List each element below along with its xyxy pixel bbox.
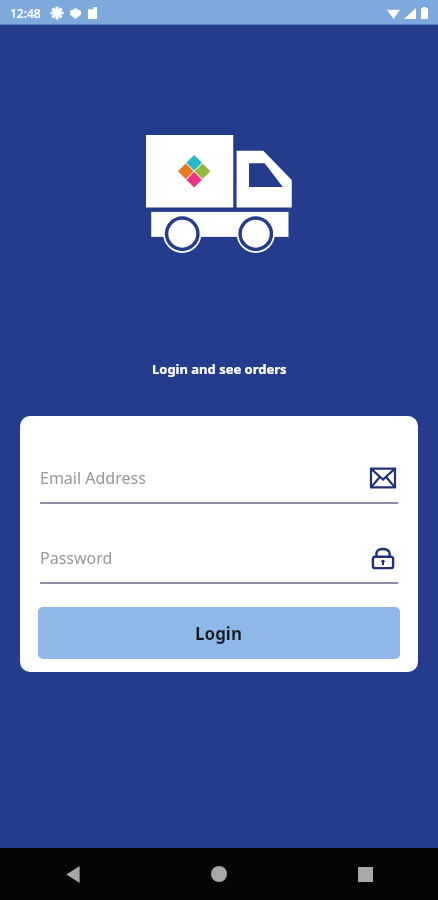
button[interactable]: Login [38, 607, 400, 659]
staticText: Email Address [40, 467, 146, 489]
button[interactable]: Back [0, 848, 146, 900]
button[interactable]: Home [146, 848, 292, 900]
button[interactable]: Email Address [40, 454, 398, 502]
staticText: 12:48 [10, 5, 41, 21]
other: Email [368, 463, 398, 493]
staticText: Password [40, 547, 113, 569]
staticText: Login and see orders [152, 360, 287, 378]
button[interactable]: Password [40, 534, 398, 582]
button[interactable]: Recent apps [292, 848, 438, 900]
other: Password [368, 543, 398, 573]
staticText: Login [195, 622, 243, 645]
